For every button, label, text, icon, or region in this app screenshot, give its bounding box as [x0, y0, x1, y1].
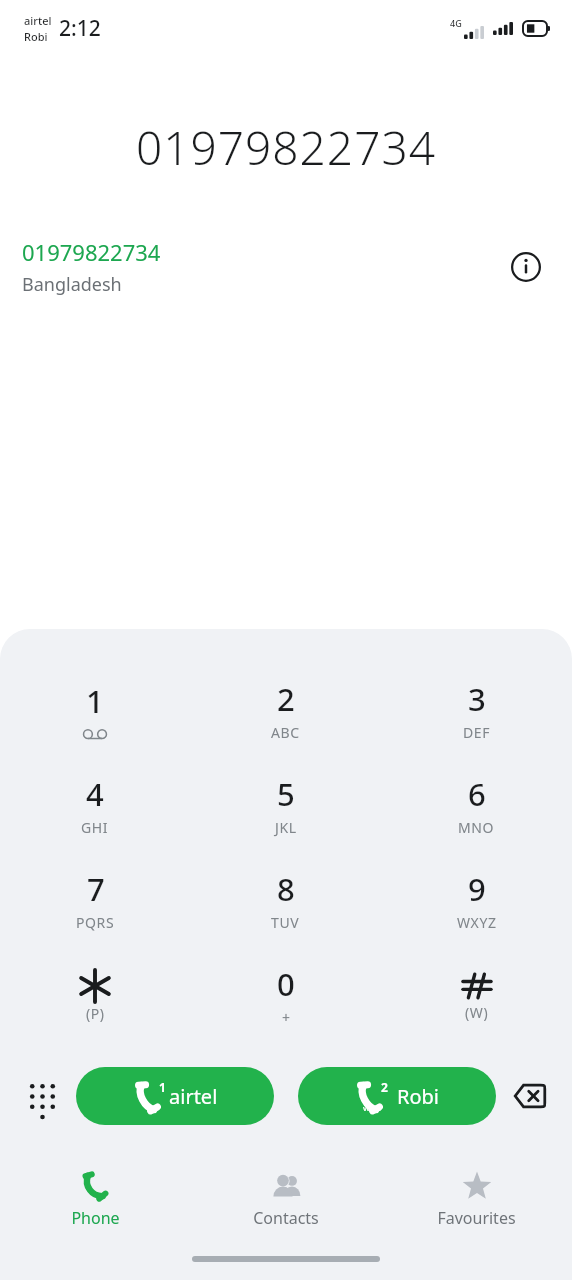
button[interactable]: (P)	[0, 947, 190, 1042]
staticText: 9	[468, 868, 486, 910]
button[interactable]: 8	[190, 852, 381, 947]
button[interactable]: 6	[381, 757, 572, 852]
button[interactable]: Favourites	[381, 1162, 572, 1238]
staticText: (P)	[86, 1004, 105, 1023]
staticText: 2	[277, 678, 295, 720]
staticText: 1	[159, 1079, 166, 1095]
staticText: airtel	[24, 13, 52, 28]
button[interactable]: 9	[381, 852, 572, 947]
staticText: 01979822734	[22, 237, 161, 267]
staticText: Robi	[397, 1083, 439, 1110]
staticText: 6	[468, 773, 486, 815]
staticText: WXYZ	[457, 913, 497, 932]
staticText: 4G	[450, 17, 462, 29]
button[interactable]: 0	[190, 947, 381, 1042]
staticText: 1	[86, 680, 104, 722]
staticText: 5	[277, 773, 295, 815]
staticText: DEF	[463, 723, 491, 742]
button[interactable]: 3	[381, 662, 572, 757]
button[interactable]: 1	[0, 662, 190, 757]
staticText: GHI	[81, 818, 109, 837]
button[interactable]: 2	[190, 662, 381, 757]
staticText: Phone	[71, 1207, 120, 1229]
button[interactable]: 7	[0, 852, 190, 947]
staticText: Bangladesh	[22, 272, 122, 297]
staticText: airtel	[169, 1083, 218, 1110]
staticText: MNO	[458, 818, 495, 837]
staticText: 3	[468, 678, 486, 720]
staticText: (W)	[465, 1003, 489, 1022]
button[interactable]: 1	[76, 1067, 274, 1125]
button[interactable]: (W)	[381, 947, 572, 1042]
staticText: VoLTE	[363, 1105, 381, 1113]
button[interactable]: Phone	[0, 1162, 190, 1238]
staticText: 2	[381, 1079, 388, 1095]
staticText: PQRS	[76, 913, 115, 932]
staticText: ABC	[271, 723, 300, 742]
button[interactable]: 4	[0, 757, 190, 852]
staticText: 01979822734	[136, 116, 436, 179]
staticText: Favourites	[437, 1207, 516, 1229]
button[interactable]: 2	[298, 1067, 496, 1125]
button[interactable]: Backspace	[504, 1070, 556, 1122]
button[interactable]: 5	[190, 757, 381, 852]
staticText: 8	[277, 868, 295, 910]
staticText: +	[282, 1008, 291, 1027]
staticText: 0	[277, 963, 295, 1005]
staticText: Contacts	[253, 1207, 319, 1229]
staticText: TUV	[271, 913, 300, 932]
button[interactable]: Contact info	[502, 243, 550, 291]
button[interactable]: 01979822734	[0, 228, 572, 306]
button[interactable]: Contacts	[190, 1162, 381, 1238]
staticText: Robi	[24, 29, 48, 44]
staticText: 7	[87, 868, 105, 910]
staticText: 4	[86, 773, 104, 815]
staticText: 2:12	[59, 14, 101, 43]
button[interactable]: Dialpad	[16, 1070, 68, 1122]
staticText: JKL	[275, 818, 297, 837]
